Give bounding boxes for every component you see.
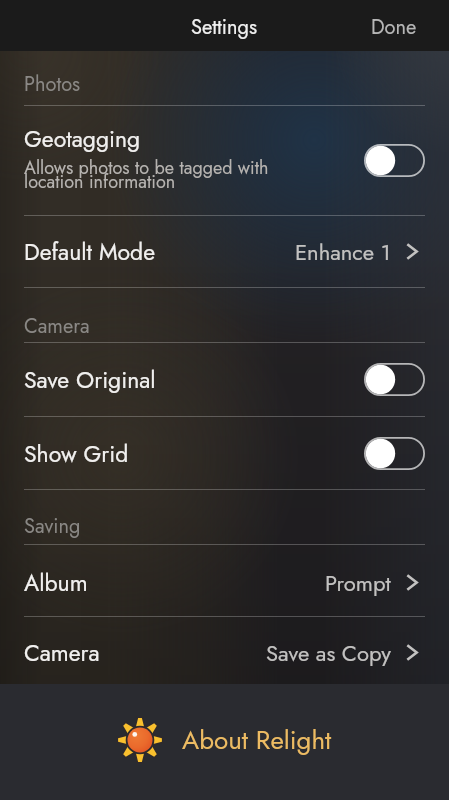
button[interactable]: Show Grid <box>0 417 449 489</box>
staticText: Show Grid <box>24 437 364 470</box>
staticText: location information <box>24 169 176 195</box>
button[interactable]: Default Mode <box>0 216 449 287</box>
staticText: Default Mode <box>24 235 295 268</box>
staticText: Done <box>371 13 417 42</box>
button[interactable]: Toggle <box>364 437 425 470</box>
staticText: Album <box>24 566 325 599</box>
button[interactable]: Save Original <box>0 343 449 416</box>
button[interactable]: Done <box>347 0 449 51</box>
staticText: Saving <box>24 512 81 541</box>
staticText: Prompt <box>325 567 391 599</box>
staticText: Settings <box>191 13 258 42</box>
staticText: Camera <box>24 636 266 669</box>
staticText: Geotagging <box>24 122 141 155</box>
staticText: About Relight <box>182 721 332 759</box>
staticText: Save Original <box>24 363 364 396</box>
staticText: Allows photos to be tagged with <box>24 155 269 181</box>
staticText: Photos <box>24 70 81 99</box>
button[interactable]: Toggle <box>364 363 425 396</box>
button[interactable]: Camera <box>0 617 449 684</box>
button[interactable]: Toggle <box>364 144 425 177</box>
staticText: Enhance 1 <box>295 236 391 268</box>
button[interactable]: Geotagging <box>0 106 449 215</box>
staticText: Save as Copy <box>266 637 391 669</box>
staticText: Camera <box>24 312 90 341</box>
button[interactable]: Album <box>0 545 449 616</box>
button[interactable]: About Relight <box>0 684 449 800</box>
